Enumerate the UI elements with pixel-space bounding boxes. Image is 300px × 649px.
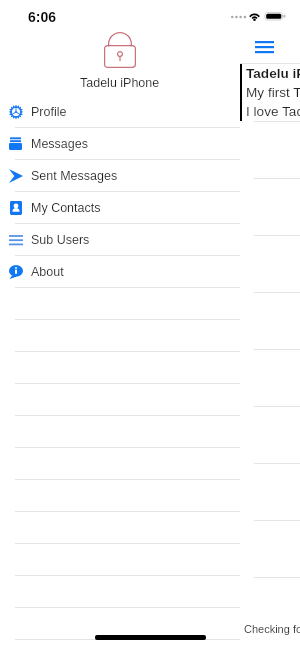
staticText: About	[31, 265, 64, 279]
staticText: My first Tadelu message	[246, 85, 300, 100]
staticText: Tadelu iPhone	[80, 76, 160, 90]
button[interactable]: Menu	[253, 37, 276, 57]
staticText: Profile	[31, 105, 67, 119]
button[interactable]: Sub Users	[0, 224, 240, 256]
button[interactable]: Sent Messages	[0, 160, 240, 192]
staticText: Checking for new messages	[244, 623, 300, 635]
button[interactable]: Messages	[0, 128, 240, 160]
staticText: Messages	[31, 137, 88, 151]
staticText: Sub Users	[31, 233, 90, 247]
button[interactable]: Profile	[0, 96, 240, 128]
button[interactable]: About	[0, 256, 240, 288]
button[interactable]: My Contacts	[0, 192, 240, 224]
staticText: Sent Messages	[31, 169, 118, 183]
staticText: My Contacts	[31, 201, 101, 215]
staticText: Tadelu iPhone	[246, 66, 300, 81]
staticText: I love Tadelu app	[246, 104, 300, 119]
staticText: 6:06	[28, 9, 57, 25]
button[interactable]: Tadelu iPhone	[240, 63, 300, 122]
